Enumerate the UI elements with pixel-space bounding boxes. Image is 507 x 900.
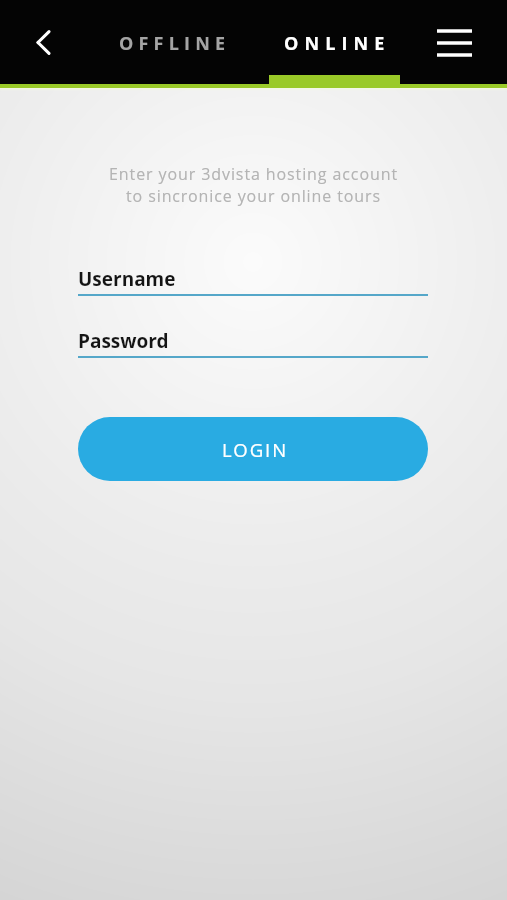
staticText: Username	[78, 266, 176, 292]
button[interactable]: Username	[78, 266, 428, 301]
staticText: Password	[78, 328, 169, 354]
button[interactable]: Back	[20, 20, 65, 65]
button[interactable]: LOGIN	[78, 417, 428, 481]
staticText: OFFLINE	[119, 31, 231, 56]
staticText: ONLINE	[284, 31, 391, 56]
button[interactable]: ONLINE	[279, 22, 395, 64]
staticText: Enter your 3dvista hosting account to si…	[0, 163, 507, 207]
button[interactable]: Password	[78, 328, 428, 363]
button[interactable]: OFFLINE	[114, 22, 236, 64]
button[interactable]: Menu	[432, 20, 477, 65]
staticText: LOGIN	[222, 437, 289, 462]
